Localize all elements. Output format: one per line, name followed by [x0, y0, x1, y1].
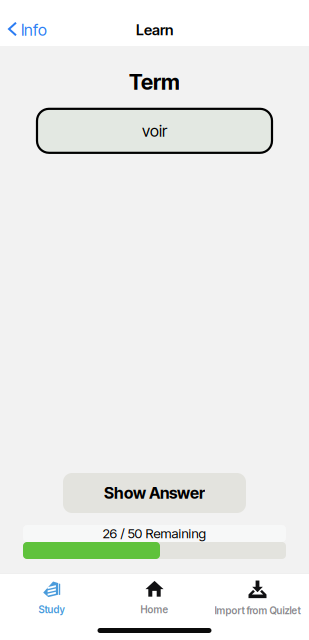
- button[interactable]: Home: [103, 573, 206, 619]
- staticText: Show Answer: [104, 483, 205, 503]
- button[interactable]: Info: [0, 14, 57, 46]
- button[interactable]: Import from Quizlet: [206, 573, 309, 619]
- staticText: Info: [21, 20, 47, 40]
- staticText: Learn: [136, 21, 173, 39]
- staticText: Term: [129, 69, 180, 95]
- button[interactable]: Show Answer: [63, 473, 246, 513]
- staticText: 26 / 50 Remaining: [102, 525, 206, 541]
- staticText: Home: [140, 603, 168, 616]
- staticText: Study: [38, 603, 64, 616]
- staticText: Import from Quizlet: [214, 604, 300, 617]
- staticText: voir: [142, 121, 167, 140]
- button[interactable]: Study: [0, 573, 103, 619]
